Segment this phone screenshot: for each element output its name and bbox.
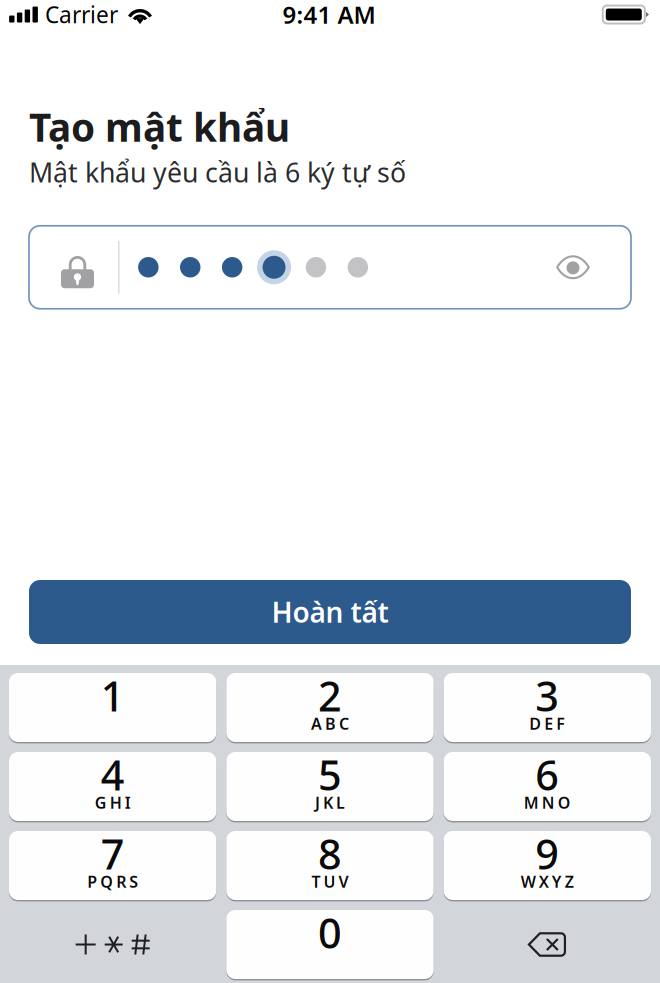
staticText: T U V [311, 871, 348, 892]
staticText: 0 [318, 905, 342, 960]
staticText: W X Y Z [521, 871, 574, 892]
button[interactable]: 6 [444, 752, 651, 821]
staticText: A B C [311, 713, 349, 734]
button[interactable]: Hoàn tất [29, 580, 631, 644]
staticText: 9:41 AM [282, 0, 375, 30]
staticText: 9 [535, 826, 559, 881]
button[interactable]: 4 [9, 752, 216, 821]
staticText: 5 [318, 747, 342, 802]
staticText: M N O [524, 792, 571, 813]
staticText: 2 [318, 668, 342, 723]
staticText: Tạo mật khẩu [29, 101, 290, 152]
staticText: 8 [318, 826, 342, 881]
staticText: 3 [535, 668, 559, 723]
button[interactable]: 1 [9, 673, 216, 742]
staticText: 1 [101, 668, 125, 723]
staticText: Carrier [45, 0, 118, 29]
button[interactable]: 3 [444, 673, 651, 742]
staticText: G H I [95, 792, 131, 813]
staticText: Mật khẩu yêu cầu là 6 ký tự số [29, 154, 406, 190]
staticText: D E F [529, 713, 565, 734]
staticText: P Q R S [87, 871, 138, 892]
button[interactable]: 7 [9, 831, 216, 900]
button[interactable]: 5 [226, 752, 434, 821]
staticText: 7 [101, 826, 125, 881]
staticText: J K L [315, 792, 345, 813]
staticText: 6 [535, 747, 559, 802]
button[interactable]: Symbols [9, 910, 216, 979]
button[interactable]: 8 [226, 831, 434, 900]
button[interactable]: Show password [542, 239, 604, 295]
button[interactable]: 0 [226, 910, 434, 979]
staticText: 4 [101, 747, 125, 802]
button[interactable]: 2 [226, 673, 434, 742]
staticText: Hoàn tất [271, 593, 388, 631]
button[interactable]: 9 [444, 831, 651, 900]
button[interactable]: Delete [444, 910, 651, 979]
